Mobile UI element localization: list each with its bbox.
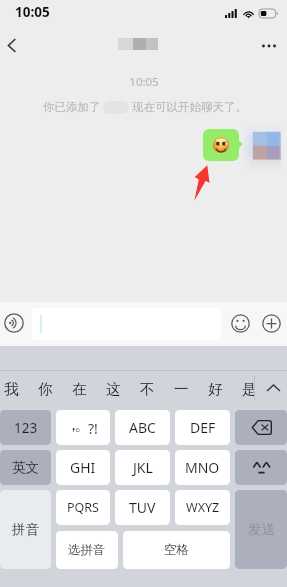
button[interactable]: Delete — [235, 410, 287, 445]
button[interactable]: 不 — [130, 371, 164, 405]
staticText: 英文 — [12, 459, 39, 476]
staticText: MNO — [185, 458, 220, 477]
button[interactable]: ABC — [115, 410, 170, 445]
button[interactable]: Voice input — [2, 311, 25, 334]
staticText: 好 — [208, 380, 223, 398]
button[interactable]: 这 — [96, 371, 130, 405]
button[interactable]: Emoji message — [203, 129, 239, 161]
button[interactable]: DEF — [175, 410, 230, 445]
button[interactable]: 英文 — [0, 450, 51, 485]
button[interactable]: More actions — [260, 312, 282, 334]
staticText: 选拼音 — [68, 542, 106, 558]
button[interactable]: MNO — [175, 450, 230, 485]
staticText: PQRS — [67, 499, 99, 516]
staticText: 空格 — [164, 542, 189, 558]
button[interactable]: JKL — [115, 450, 170, 485]
staticText: 是 — [242, 380, 257, 398]
staticText: JKL — [133, 458, 153, 477]
button[interactable]: Expand candidates — [257, 371, 287, 405]
staticText: WXYZ — [186, 499, 220, 516]
button[interactable]: 你 — [28, 371, 62, 405]
staticText: 你已添加了 — [43, 100, 101, 114]
button[interactable]: WXYZ — [175, 490, 230, 525]
button[interactable]: 一 — [164, 371, 198, 405]
staticText: 拼音 — [12, 521, 39, 538]
staticText: 10:05 — [129, 74, 159, 90]
staticText: ABC — [129, 418, 156, 437]
button[interactable] — [32, 308, 221, 340]
button[interactable]: Emoticons — [235, 450, 287, 485]
staticText: 我 — [4, 380, 19, 398]
button[interactable]: 好 — [198, 371, 232, 405]
button[interactable]: GHI — [56, 450, 110, 485]
button[interactable]: 空格 — [123, 531, 230, 569]
button[interactable]: 在 — [62, 371, 96, 405]
staticText: GHI — [70, 458, 96, 477]
button[interactable]: PQRS — [56, 490, 110, 525]
button[interactable]: 是 — [232, 371, 266, 405]
button[interactable]: Back — [0, 28, 24, 66]
staticText: 在 — [72, 380, 87, 398]
button[interactable]: 拼音 — [0, 490, 51, 569]
button[interactable]: 选拼音 — [56, 531, 118, 569]
staticText: 现在可以开始聊天了。 — [132, 100, 247, 114]
button[interactable]: 发送 — [235, 490, 287, 569]
staticText: ，。 — [69, 415, 87, 435]
staticText: 不 — [140, 380, 155, 398]
staticText: 你 — [38, 380, 53, 398]
button[interactable]: Emoji — [229, 312, 251, 334]
staticText: 一 — [174, 380, 189, 398]
button[interactable]: 123 — [0, 410, 51, 445]
staticText: ?! — [88, 419, 98, 438]
button[interactable]: 我 — [0, 371, 28, 405]
staticText: 发送 — [248, 521, 275, 538]
button[interactable]: More options — [255, 28, 287, 66]
staticText: 这 — [106, 380, 121, 398]
staticText: 123 — [14, 419, 38, 437]
button[interactable]: TUV — [115, 490, 170, 525]
staticText: TUV — [129, 498, 156, 517]
button[interactable]: Punctuation — [56, 410, 110, 445]
staticText: DEF — [190, 418, 216, 437]
staticText: 10:05 — [15, 3, 50, 21]
